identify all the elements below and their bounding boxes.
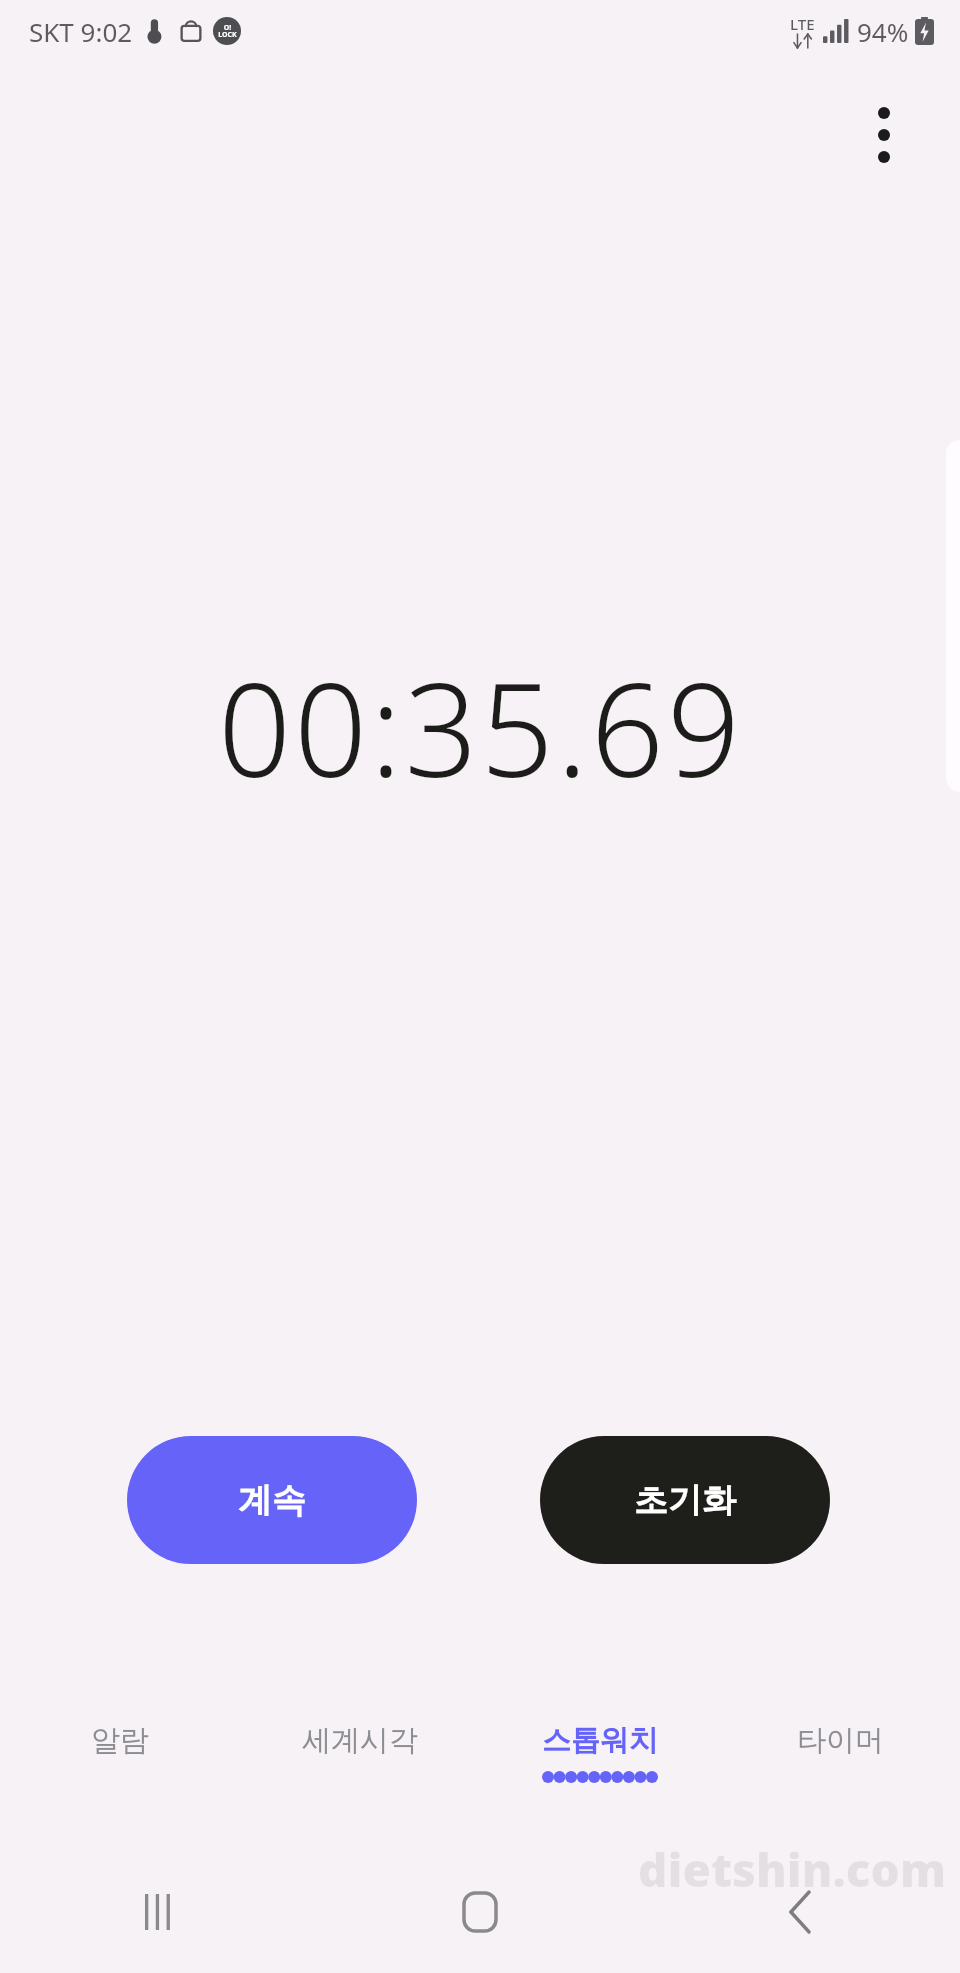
staticText: O! LOCK bbox=[218, 23, 237, 40]
staticText: 알람 bbox=[91, 1722, 149, 1759]
staticText: 스톱워치 bbox=[542, 1722, 658, 1759]
button[interactable]: Recents bbox=[0, 1850, 320, 1973]
button[interactable]: 스톱워치 bbox=[480, 1722, 720, 1822]
staticText: 세계시각 bbox=[302, 1722, 418, 1759]
button[interactable]: 세계시각 bbox=[240, 1722, 480, 1822]
button[interactable]: 계속 bbox=[127, 1436, 417, 1564]
staticText: 초기화 bbox=[634, 1479, 736, 1522]
staticText: LTE bbox=[790, 14, 815, 34]
staticText: 94% bbox=[857, 14, 909, 49]
staticText: 00:35.69 bbox=[218, 640, 743, 814]
staticText: 계속 bbox=[238, 1479, 306, 1522]
button[interactable]: Home bbox=[320, 1850, 640, 1973]
button[interactable]: 초기화 bbox=[540, 1436, 830, 1564]
button[interactable]: More options bbox=[858, 96, 910, 174]
button[interactable]: 타이머 bbox=[720, 1722, 960, 1822]
button[interactable]: 알람 bbox=[0, 1722, 240, 1822]
staticText: 타이머 bbox=[797, 1722, 884, 1759]
button[interactable]: Back bbox=[640, 1850, 960, 1973]
staticText: SKT 9:02 bbox=[29, 14, 133, 49]
staticText: dietshin.com bbox=[638, 1838, 946, 1901]
